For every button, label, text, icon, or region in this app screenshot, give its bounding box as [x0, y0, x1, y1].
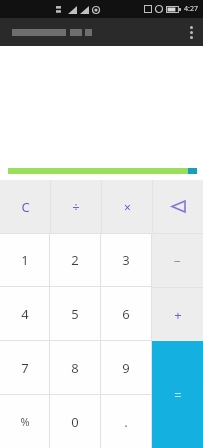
button[interactable]: More options — [179, 18, 203, 46]
button[interactable]: Backspace — [153, 180, 203, 233]
button[interactable]: % — [0, 395, 49, 448]
staticText: 4:27 — [184, 4, 198, 14]
button[interactable]: 6 — [101, 287, 151, 340]
staticText: 4 — [21, 305, 29, 323]
staticText: 3 — [122, 251, 130, 269]
staticText: + — [174, 306, 182, 324]
button[interactable]: 5 — [50, 287, 100, 340]
staticText: = — [174, 386, 182, 404]
staticText: 7 — [21, 359, 29, 377]
staticText: 5 — [71, 305, 79, 323]
staticText: 0 — [71, 413, 79, 431]
button[interactable]: + — [152, 288, 203, 341]
button[interactable]: 9 — [101, 341, 151, 394]
staticText: ÷ — [72, 198, 80, 216]
button[interactable]: 3 — [101, 234, 151, 286]
button[interactable]: ÷ — [51, 180, 101, 233]
button[interactable]: − — [152, 234, 203, 287]
staticText: 2 — [71, 251, 79, 269]
staticText: − — [174, 253, 181, 269]
button[interactable]: = — [152, 341, 203, 448]
button[interactable]: 1 — [0, 234, 49, 286]
button[interactable]: 2 — [50, 234, 100, 286]
staticText: 1 — [21, 251, 29, 269]
staticText: % — [20, 414, 30, 429]
button[interactable]: 8 — [50, 341, 100, 394]
staticText: . — [124, 413, 128, 431]
staticText: × — [124, 199, 131, 215]
staticText: C — [21, 198, 30, 216]
button[interactable]: 4 — [0, 287, 49, 340]
button[interactable]: × — [102, 180, 152, 233]
staticText: 8 — [71, 359, 79, 377]
button[interactable]: C — [0, 180, 50, 233]
staticText: 9 — [122, 359, 130, 377]
button[interactable]: . — [101, 395, 151, 448]
button[interactable]: 7 — [0, 341, 49, 394]
staticText: 6 — [122, 305, 130, 323]
button[interactable]: 0 — [50, 395, 100, 448]
